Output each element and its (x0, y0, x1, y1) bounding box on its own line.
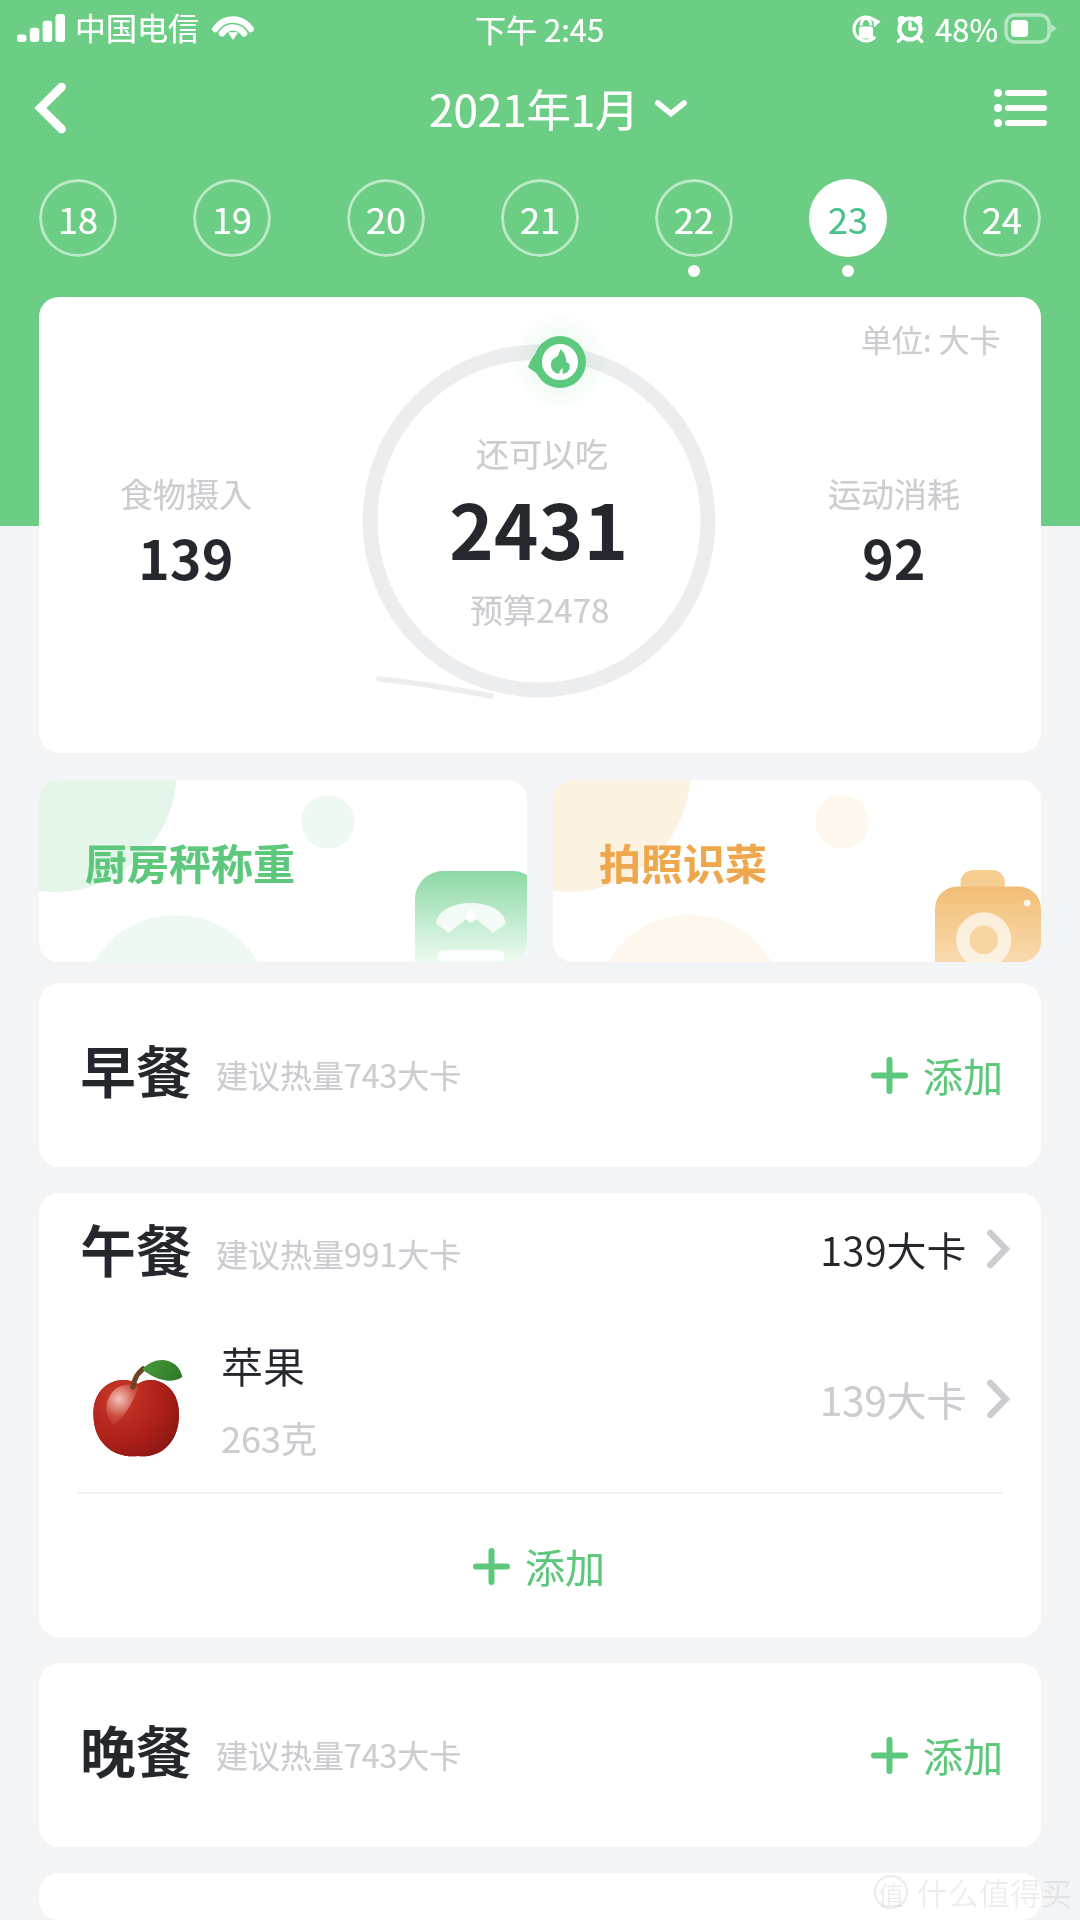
staticText: 还可以吃 (476, 429, 608, 477)
staticText: 139大卡 (820, 1370, 967, 1428)
button[interactable]: 苹果 (39, 1305, 1041, 1492)
button[interactable]: Back (16, 73, 86, 143)
button[interactable]: Menu (984, 73, 1054, 143)
staticText: 建议热量743大卡 (216, 1051, 462, 1097)
staticText: 24 (982, 192, 1022, 244)
staticText: 19 (212, 192, 252, 244)
staticText: 早餐 (80, 1028, 192, 1109)
button[interactable]: 22 (655, 179, 733, 257)
staticText: 20 (366, 192, 406, 244)
button[interactable]: 19 (193, 179, 271, 257)
staticText: 预算2478 (470, 585, 610, 633)
staticText: 21 (520, 192, 560, 244)
staticText: 食物摄入 (120, 469, 252, 517)
staticText: 添加 (923, 1046, 1003, 1104)
button[interactable]: 23 (809, 179, 887, 257)
staticText: 值 (878, 1875, 905, 1909)
staticText: 2021年1月 (429, 76, 640, 140)
button[interactable]: 厨房秤称重 (39, 780, 527, 962)
staticText: 18 (58, 192, 98, 244)
staticText: 下午 2:45 (475, 6, 605, 51)
button[interactable]: 添加 (874, 1726, 1003, 1784)
staticText: 拍照识菜 (599, 831, 768, 892)
button[interactable]: 添加 (874, 1046, 1003, 1104)
staticText: 苹果 (221, 1334, 306, 1395)
staticText: 139大卡 (820, 1220, 967, 1278)
staticText: 运动消耗 (828, 469, 960, 517)
staticText: 22 (674, 192, 714, 244)
staticText: 23 (828, 192, 868, 244)
button[interactable]: 24 (963, 179, 1041, 257)
button[interactable]: 18 (39, 179, 117, 257)
button[interactable]: 拍照识菜 (553, 780, 1041, 962)
staticText: 48% (935, 6, 998, 51)
button[interactable]: 2021年1月 (429, 76, 686, 140)
staticText: 建议热量743大卡 (216, 1731, 462, 1777)
staticText: 添加 (525, 1537, 605, 1595)
staticText: 建议热量991大卡 (216, 1230, 462, 1276)
button[interactable]: 20 (347, 179, 425, 257)
staticText: 添加 (923, 1726, 1003, 1784)
staticText: 中国电信 (75, 4, 199, 49)
staticText: 厨房秤称重 (85, 831, 296, 892)
staticText: 什么值得买 (917, 1869, 1072, 1914)
button[interactable]: 21 (501, 179, 579, 257)
staticText: 92 (862, 517, 926, 595)
staticText: 139 (138, 517, 234, 595)
staticText: 单位: 大卡 (861, 316, 1001, 361)
staticText: 263克 (221, 1411, 317, 1463)
staticText: 2431 (449, 472, 629, 582)
button[interactable]: 添加 (39, 1494, 1041, 1637)
staticText: 晚餐 (80, 1708, 192, 1789)
staticText: 午餐 (80, 1207, 192, 1288)
button[interactable]: 午餐 (39, 1193, 1041, 1305)
